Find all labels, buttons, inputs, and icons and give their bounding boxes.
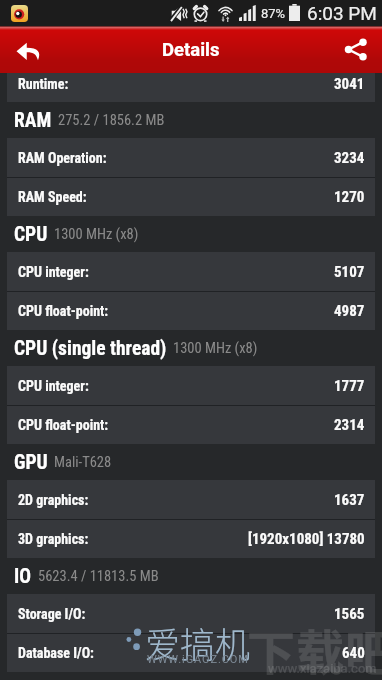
staticText: Mali-T628 — [54, 454, 112, 471]
staticText: RAM Operation: — [18, 150, 107, 166]
button[interactable]: CPU float-point: — [7, 405, 375, 444]
staticText: 2314 — [334, 416, 365, 434]
staticText: [1920x1080] 13780 — [248, 530, 365, 548]
staticText: CPU integer: — [18, 378, 89, 394]
staticText: WWW.iGAOZ.COM — [147, 653, 249, 666]
staticText: 4987 — [334, 302, 365, 320]
staticText: 275.2 / 1856.2 MB — [58, 112, 165, 129]
button[interactable]: 2D graphics: — [7, 480, 375, 519]
button[interactable]: Database I/O: — [7, 633, 375, 672]
button[interactable]: CPU integer: — [7, 366, 375, 405]
staticText: 3D graphics: — [18, 531, 89, 547]
button[interactable]: Storage I/O: — [7, 594, 375, 633]
staticText: 1300 MHz (x8) — [54, 226, 139, 243]
staticText: 1300 MHz (x8) — [173, 340, 258, 357]
staticText: GPU — [14, 451, 48, 474]
staticText: Database I/O: — [18, 645, 94, 661]
staticText: CPU — [14, 223, 48, 246]
button[interactable]: CPU integer: — [7, 252, 375, 291]
button[interactable]: Share — [329, 26, 382, 73]
button[interactable]: RAM Speed: — [7, 177, 375, 216]
staticText: RAM Speed: — [18, 189, 87, 205]
staticText: 640 — [342, 644, 365, 662]
staticText: 3234 — [334, 149, 365, 167]
button[interactable]: Runtime: — [7, 73, 375, 102]
button[interactable]: 3D graphics: — [7, 519, 375, 558]
staticText: Runtime: — [18, 76, 69, 92]
staticText: CPU (single thread) — [14, 337, 167, 360]
staticText: Details — [162, 39, 220, 61]
button[interactable]: Back — [0, 26, 52, 73]
staticText: 5107 — [334, 263, 365, 281]
staticText: 87% — [261, 6, 286, 21]
staticText: 3041 — [334, 75, 365, 93]
staticText: 下载吧 — [247, 614, 382, 680]
staticText: 1637 — [334, 491, 365, 509]
staticText: 1777 — [334, 377, 365, 395]
staticText: 1270 — [334, 188, 365, 206]
staticText: 5623.4 / 11813.5 MB — [38, 568, 159, 585]
staticText: RAM — [14, 109, 52, 132]
button[interactable]: RAM Operation: — [7, 138, 375, 177]
staticText: Storage I/O: — [18, 606, 86, 622]
staticText: 爱搞机 — [145, 617, 251, 668]
staticText: 6:03 PM — [307, 2, 377, 24]
button[interactable]: CPU float-point: — [7, 291, 375, 330]
staticText: 1565 — [334, 605, 365, 623]
staticText: 2D graphics: — [18, 492, 89, 508]
staticText: IO — [14, 565, 32, 588]
staticText: www.xiazaiba.com — [268, 661, 377, 676]
staticText: CPU integer: — [18, 264, 89, 280]
staticText: CPU float-point: — [18, 303, 109, 319]
staticText: CPU float-point: — [18, 417, 109, 433]
